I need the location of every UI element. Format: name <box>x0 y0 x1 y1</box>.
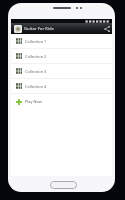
button[interactable]: Play Now <box>11 94 112 109</box>
button[interactable]: Guitar For Kids <box>11 23 112 34</box>
button[interactable]: Collection 1 <box>11 34 112 48</box>
staticText: Play Now <box>25 99 42 104</box>
staticText: Collection 1 <box>25 39 47 44</box>
button[interactable]: Collection 3 <box>11 64 112 78</box>
staticText: Guitar For Kids <box>24 26 54 32</box>
staticText: Collection 3 <box>25 69 47 74</box>
button[interactable]: Collection 4 <box>11 79 112 93</box>
staticText: Collection 2 <box>25 54 47 59</box>
button[interactable]: Share <box>102 24 111 33</box>
staticText: Collection 4 <box>25 84 47 89</box>
button[interactable]: Collection 2 <box>11 49 112 63</box>
